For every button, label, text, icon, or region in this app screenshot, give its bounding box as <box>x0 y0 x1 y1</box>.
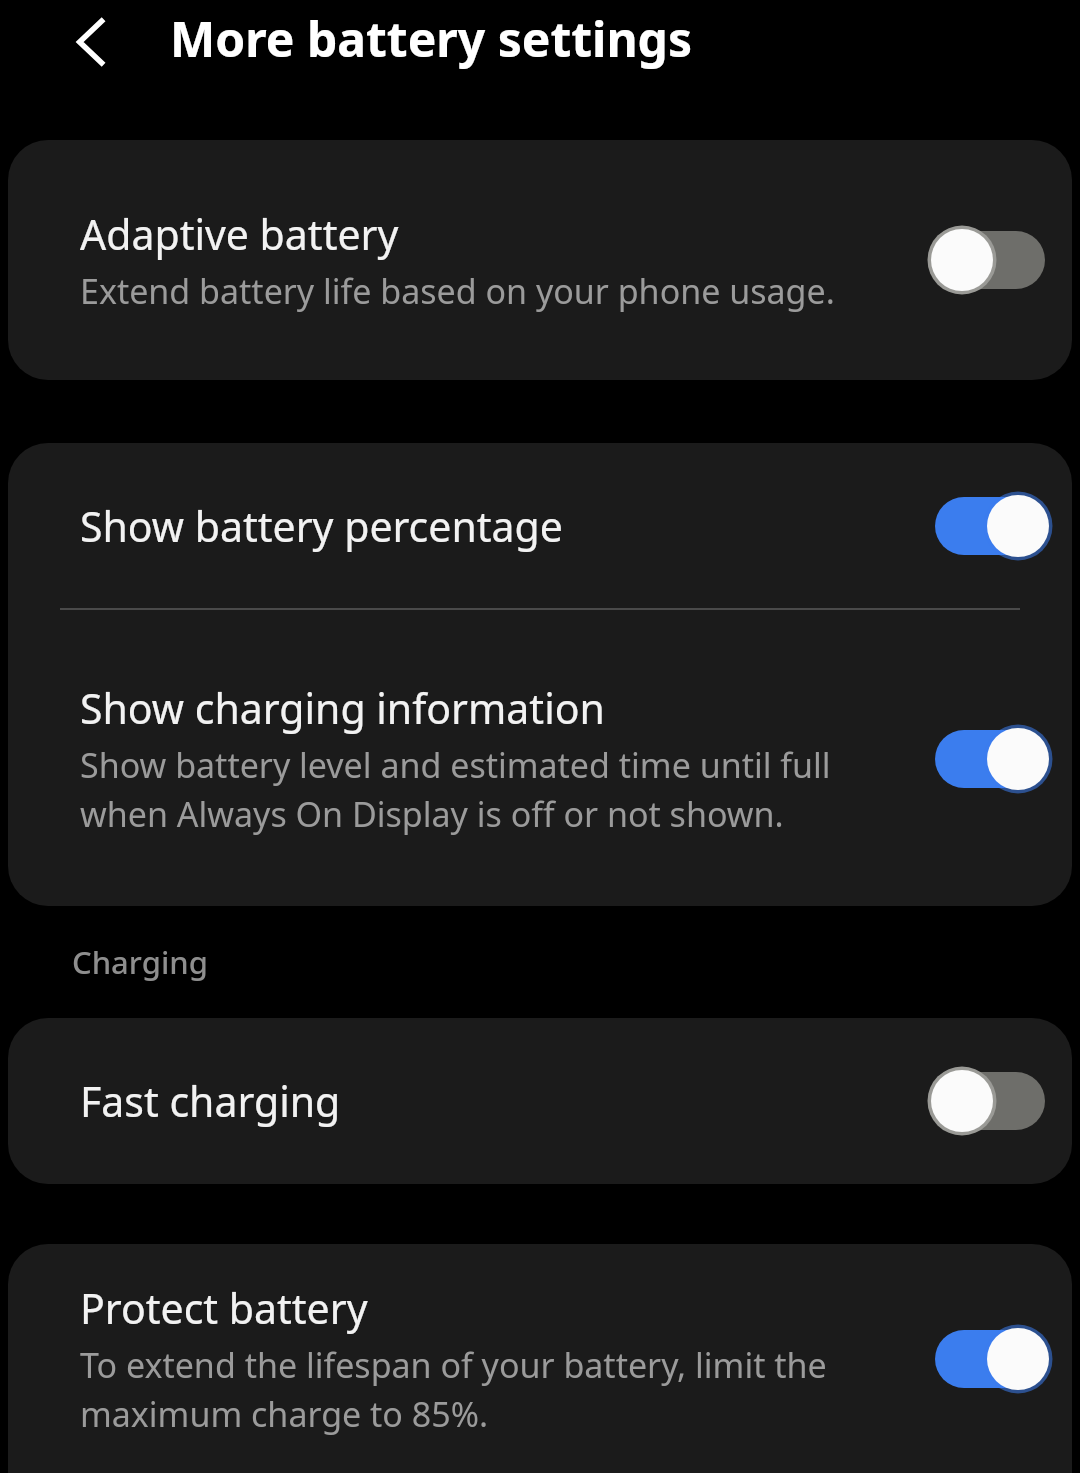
staticText: Fast charging <box>80 1073 341 1129</box>
button[interactable]: Protect battery <box>8 1280 1072 1437</box>
button[interactable]: On <box>928 1323 1052 1395</box>
button[interactable]: Off <box>928 1065 1052 1137</box>
button[interactable]: Show charging information <box>8 680 1072 837</box>
staticText: To extend the lifespan of your battery, … <box>80 1342 910 1437</box>
button[interactable]: Back <box>52 0 136 84</box>
button[interactable]: On <box>928 723 1052 795</box>
staticText: Extend battery life based on your phone … <box>80 268 835 314</box>
button[interactable]: Adaptive battery <box>8 206 1072 314</box>
staticText: Show battery percentage <box>80 498 563 554</box>
staticText: Adaptive battery <box>80 206 399 262</box>
button[interactable]: Show battery percentage <box>8 490 1072 562</box>
staticText: More battery settings <box>170 6 693 71</box>
staticText: Show charging information <box>80 680 605 736</box>
button[interactable]: Off <box>928 224 1052 296</box>
staticText: Protect battery <box>80 1280 368 1336</box>
staticText: Charging <box>72 941 208 983</box>
button[interactable]: On <box>928 490 1052 562</box>
staticText: Show battery level and estimated time un… <box>80 742 910 837</box>
button[interactable]: Fast charging <box>8 1065 1072 1137</box>
